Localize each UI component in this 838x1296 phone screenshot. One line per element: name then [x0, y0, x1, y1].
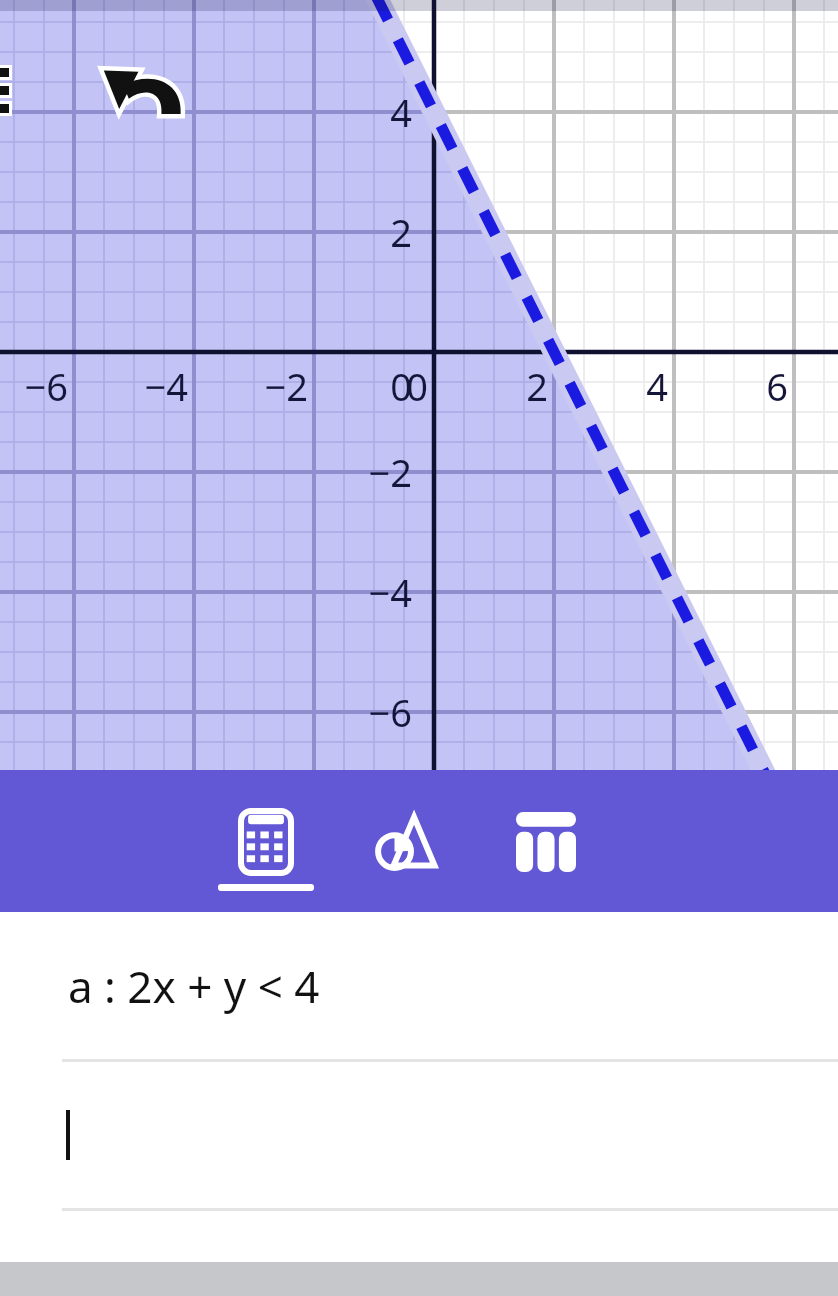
staticText: 0: [300, 360, 412, 412]
button[interactable]: Geometry: [356, 770, 456, 912]
button[interactable]: Table: [496, 770, 596, 912]
button[interactable]: [0, 1062, 838, 1208]
staticText: 2: [480, 360, 548, 412]
staticText: −4: [300, 566, 412, 618]
staticText: 0: [372, 360, 428, 412]
staticText: −6: [0, 360, 68, 412]
staticText: 6: [720, 360, 788, 412]
button[interactable]: a : 2x + y < 4: [0, 912, 838, 1059]
staticText: 4: [600, 360, 668, 412]
staticText: −2: [300, 446, 412, 498]
staticText: 4: [300, 86, 412, 138]
staticText: −6: [300, 686, 412, 738]
staticText: −2: [240, 360, 308, 412]
button[interactable]: Undo: [100, 56, 196, 126]
button[interactable]: Calculator: [216, 770, 316, 912]
staticText: a : 2x + y < 4: [68, 956, 320, 1016]
staticText: −4: [120, 360, 188, 412]
button[interactable]: More options: [0, 64, 14, 116]
staticText: 2: [300, 206, 412, 258]
